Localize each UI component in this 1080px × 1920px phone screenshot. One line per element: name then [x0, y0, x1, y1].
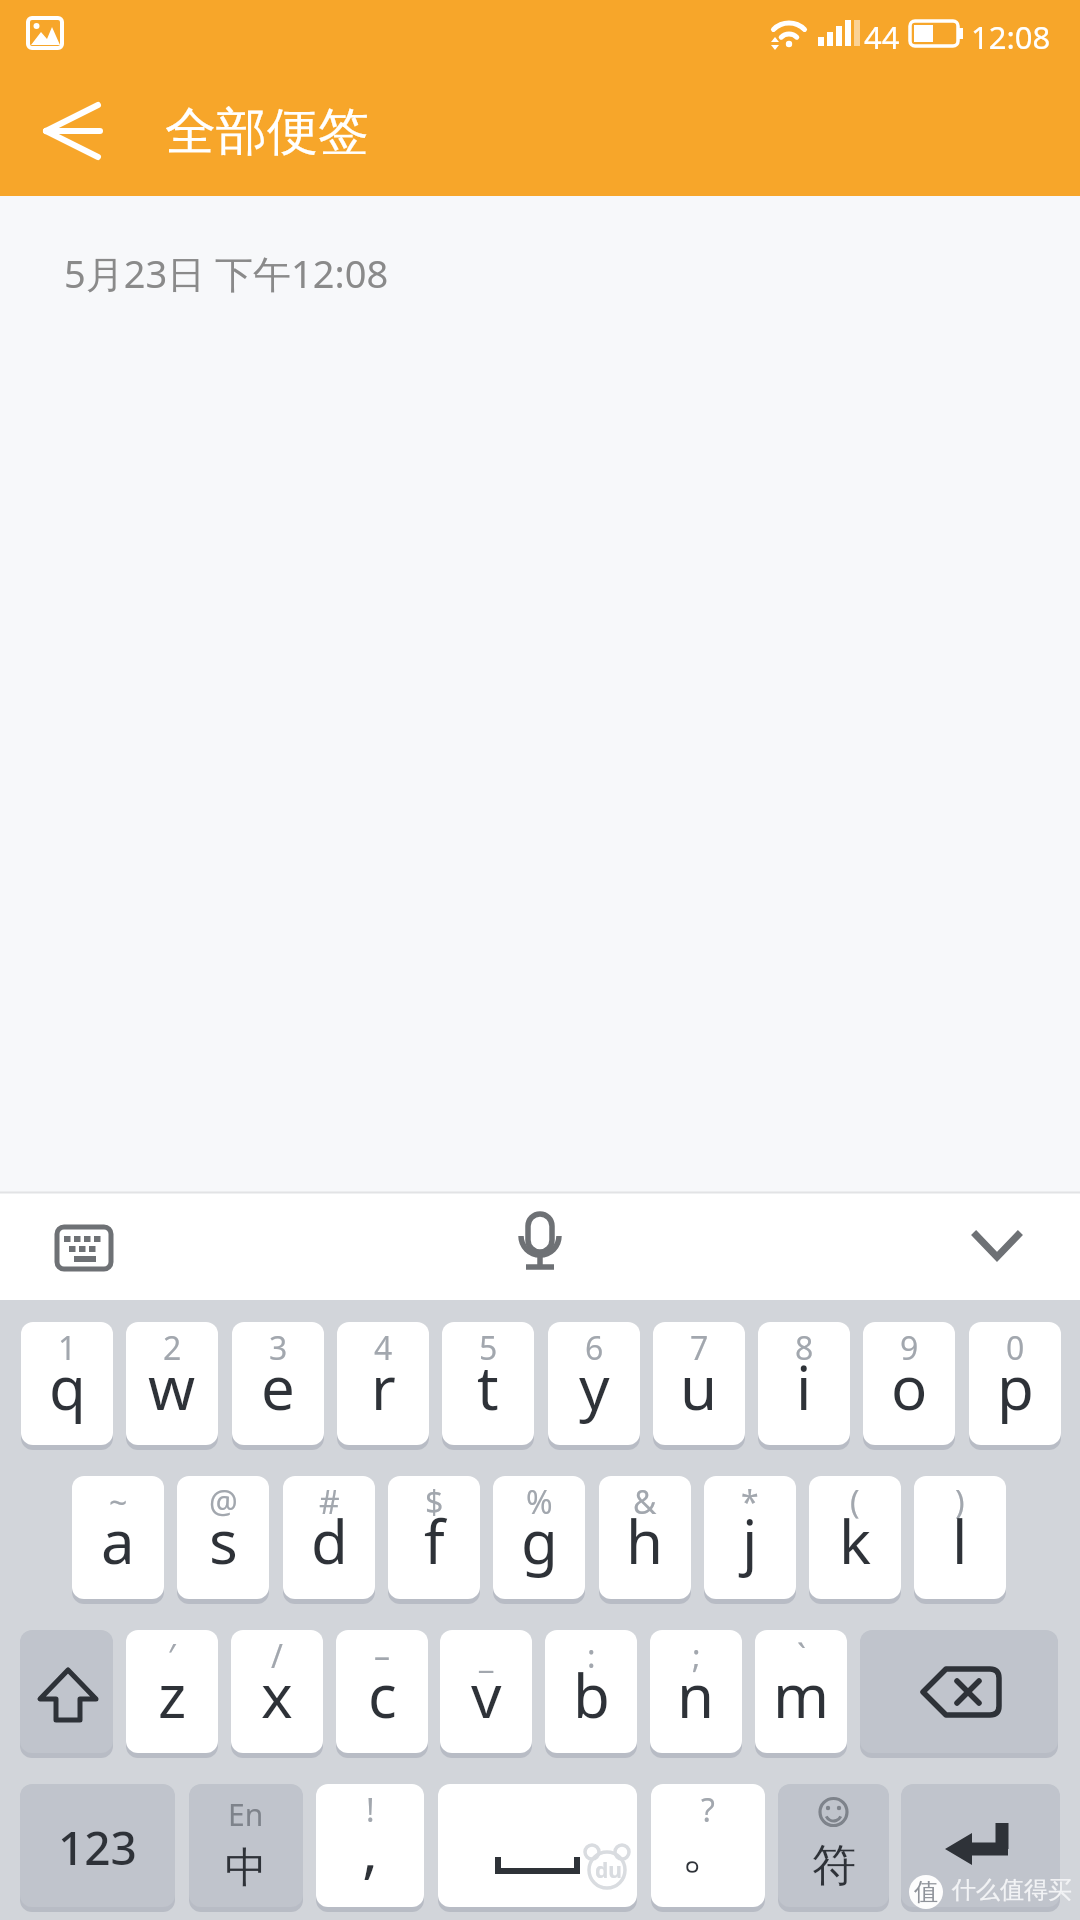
staticText: 2: [163, 1326, 182, 1370]
button[interactable]: $: [388, 1476, 480, 1599]
staticText: 什么值得买: [952, 1875, 1072, 1905]
staticText: g: [521, 1500, 558, 1582]
button[interactable]: [20, 1630, 113, 1753]
staticText: (: [850, 1480, 860, 1524]
button[interactable]: #: [283, 1476, 375, 1599]
staticText: 中: [225, 1842, 267, 1895]
staticText: b: [573, 1654, 610, 1736]
staticText: s: [209, 1500, 238, 1582]
staticText: 5: [479, 1326, 498, 1370]
staticText: *: [741, 1480, 759, 1524]
button[interactable]: 7: [653, 1322, 745, 1445]
button[interactable]: [28, 92, 118, 170]
staticText: q: [49, 1346, 86, 1428]
staticText: d: [311, 1500, 348, 1582]
staticText: n: [677, 1654, 715, 1736]
button[interactable]: %: [493, 1476, 585, 1599]
staticText: 7: [690, 1326, 709, 1370]
button[interactable]: –: [336, 1630, 428, 1753]
staticText: 。: [681, 1815, 735, 1883]
button[interactable]: _: [440, 1630, 532, 1753]
staticText: e: [261, 1346, 295, 1428]
staticText: 5月23日 下午12:08: [64, 247, 389, 299]
staticText: #: [319, 1480, 340, 1524]
staticText: $: [425, 1480, 444, 1524]
staticText: ): [955, 1480, 965, 1524]
button[interactable]: !: [316, 1784, 424, 1907]
staticText: p: [997, 1346, 1034, 1428]
staticText: ?: [701, 1788, 715, 1832]
button[interactable]: ?: [651, 1784, 765, 1907]
button[interactable]: @: [177, 1476, 269, 1599]
button[interactable]: ;: [650, 1630, 742, 1753]
button[interactable]: ′: [126, 1630, 218, 1753]
staticText: j: [742, 1500, 758, 1582]
button[interactable]: [500, 1206, 580, 1286]
button[interactable]: `: [755, 1630, 847, 1753]
button[interactable]: ): [914, 1476, 1006, 1599]
button[interactable]: du: [438, 1784, 637, 1907]
staticText: a: [101, 1500, 135, 1582]
button[interactable]: 4: [337, 1322, 429, 1445]
staticText: 44: [864, 16, 900, 58]
staticText: w: [148, 1346, 196, 1428]
staticText: –: [374, 1634, 391, 1678]
button[interactable]: ~: [72, 1476, 164, 1599]
staticText: k: [839, 1500, 872, 1582]
button[interactable]: (: [809, 1476, 901, 1599]
staticText: :: [587, 1634, 596, 1678]
staticText: _: [479, 1634, 494, 1678]
staticText: `: [797, 1634, 806, 1678]
button[interactable]: 123: [20, 1784, 175, 1907]
staticText: t: [477, 1346, 499, 1428]
staticText: 值: [914, 1877, 938, 1907]
staticText: 全部便签: [165, 100, 369, 164]
staticText: 1: [58, 1326, 77, 1370]
staticText: ,: [362, 1808, 379, 1890]
button[interactable]: 0: [969, 1322, 1061, 1445]
staticText: 12:08: [971, 16, 1051, 58]
button[interactable]: :: [545, 1630, 637, 1753]
button[interactable]: 6: [548, 1322, 640, 1445]
button[interactable]: /: [231, 1630, 323, 1753]
staticText: 8: [795, 1326, 814, 1370]
staticText: r: [371, 1346, 396, 1428]
button[interactable]: 8: [758, 1322, 850, 1445]
button[interactable]: [901, 1784, 1060, 1907]
staticText: l: [952, 1500, 968, 1582]
button[interactable]: En: [189, 1784, 303, 1907]
staticText: @: [209, 1480, 238, 1524]
staticText: f: [424, 1500, 445, 1582]
staticText: 符: [812, 1838, 856, 1893]
staticText: 4: [374, 1326, 393, 1370]
button[interactable]: [40, 1206, 130, 1286]
button[interactable]: &: [599, 1476, 691, 1599]
staticText: En: [228, 1794, 264, 1835]
staticText: 123: [58, 1816, 137, 1879]
staticText: du: [595, 1856, 622, 1885]
button[interactable]: 5: [442, 1322, 534, 1445]
staticText: v: [471, 1654, 502, 1736]
button[interactable]: 1: [21, 1322, 113, 1445]
button[interactable]: 符: [778, 1784, 889, 1907]
staticText: 0: [1006, 1326, 1025, 1370]
staticText: i: [796, 1346, 812, 1428]
staticText: ~: [109, 1480, 128, 1524]
staticText: z: [158, 1654, 187, 1736]
button[interactable]: 2: [126, 1322, 218, 1445]
staticText: h: [626, 1500, 664, 1582]
button[interactable]: [860, 1630, 1058, 1753]
staticText: 6: [585, 1326, 604, 1370]
button[interactable]: *: [704, 1476, 796, 1599]
staticText: 9: [900, 1326, 919, 1370]
button[interactable]: 9: [863, 1322, 955, 1445]
staticText: %: [526, 1480, 553, 1524]
button[interactable]: [955, 1206, 1039, 1286]
staticText: ′: [168, 1634, 176, 1678]
staticText: u: [680, 1346, 718, 1428]
button[interactable]: 3: [232, 1322, 324, 1445]
staticText: m: [773, 1654, 830, 1736]
staticText: ;: [692, 1634, 701, 1678]
staticText: 3: [269, 1326, 288, 1370]
staticText: c: [368, 1654, 397, 1736]
